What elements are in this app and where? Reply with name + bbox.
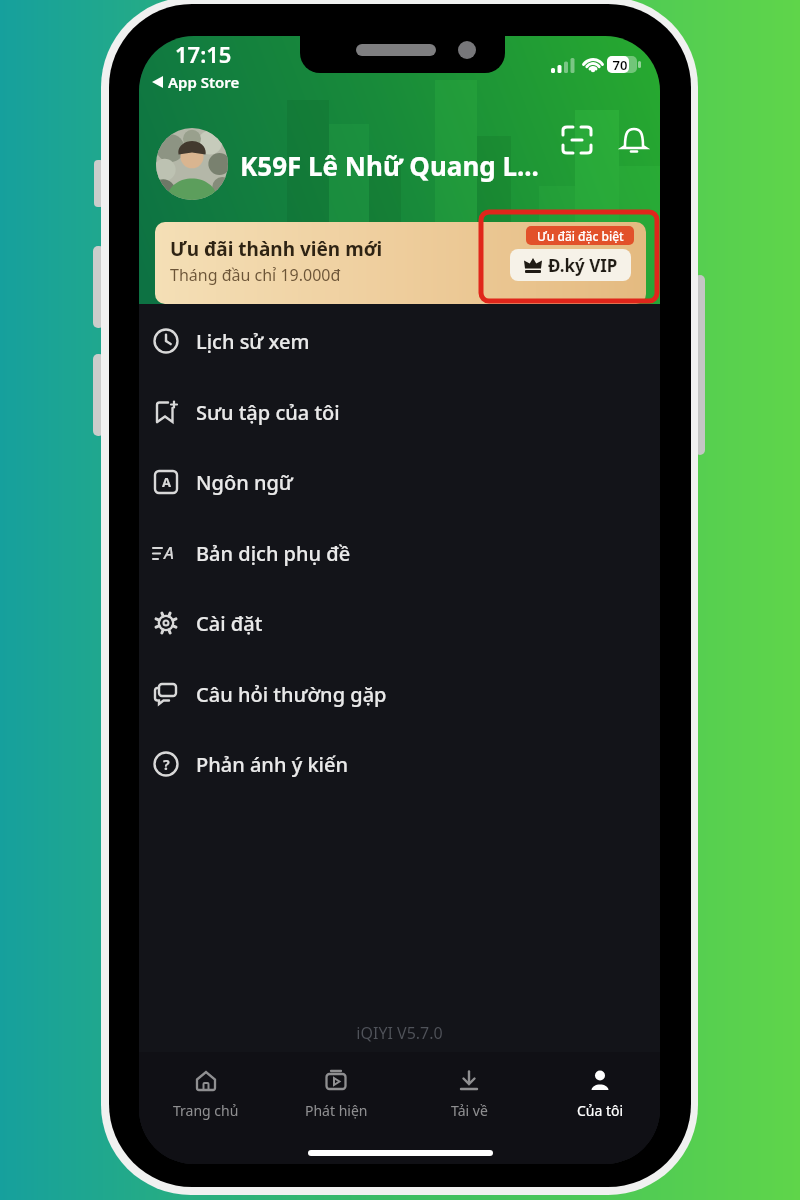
button[interactable] [621, 126, 647, 154]
staticText: 70 [607, 56, 633, 74]
button[interactable] [156, 128, 228, 200]
staticText: Phát hiện [305, 1101, 368, 1120]
staticText: Câu hỏi thường gặp [196, 681, 387, 708]
staticText: Của tôi [577, 1101, 624, 1120]
staticText: iQIYI V5.7.0 [139, 1022, 660, 1044]
staticText: App Store [168, 72, 240, 92]
staticText: Sưu tập của tôi [196, 399, 340, 426]
button[interactable]: Câu hỏi thường gặp [139, 667, 660, 721]
button[interactable]: Cài đặt [139, 596, 660, 650]
staticText: K59F Lê Nhữ Quang L... [240, 148, 539, 183]
staticText: Trang chủ [173, 1101, 239, 1120]
staticText: Ngôn ngữ [196, 469, 293, 496]
staticText: ? [163, 755, 170, 774]
button[interactable]: Ưu đãi thành viên mới [155, 222, 646, 304]
button[interactable]: A [139, 455, 660, 509]
button[interactable] [563, 127, 591, 153]
button[interactable]: Sưu tập của tôi [139, 385, 660, 439]
staticText: Phản ánh ý kiến [196, 751, 348, 778]
staticText: A [164, 541, 174, 564]
staticText: Cài đặt [196, 610, 263, 637]
staticText: Bản dịch phụ đề [196, 540, 351, 567]
staticText: Tải về [451, 1101, 488, 1120]
button[interactable]: Phát hiện [281, 1068, 391, 1124]
staticText: 17:15 [175, 39, 232, 69]
staticText: Ưu đãi thành viên mới [170, 236, 383, 262]
button[interactable]: A [139, 526, 660, 580]
staticText: Đ.ký VIP [548, 254, 618, 277]
staticText: Tháng đầu chỉ 19.000đ [170, 264, 341, 286]
button[interactable]: Tải về [414, 1068, 524, 1124]
staticText: Lịch sử xem [196, 328, 310, 355]
button[interactable]: Đ.ký VIP [510, 249, 631, 281]
button[interactable]: ? [139, 737, 660, 791]
button[interactable]: Lịch sử xem [139, 314, 660, 368]
staticText: A [162, 473, 171, 491]
button[interactable]: Trang chủ [151, 1068, 261, 1124]
staticText: Ưu đãi đặc biệt [537, 228, 624, 244]
button[interactable]: Của tôi [545, 1068, 655, 1124]
